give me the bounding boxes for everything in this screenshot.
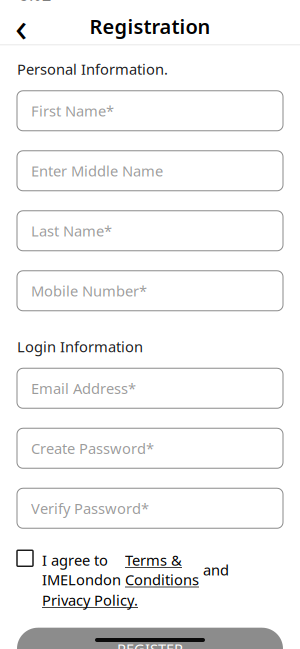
button[interactable]: Email Address*	[17, 368, 283, 408]
button[interactable]: Last Name*	[17, 211, 283, 251]
staticText: I agree to IMELondon	[42, 550, 125, 589]
button[interactable]: REGISTER	[17, 628, 283, 649]
staticText: Enter Middle Name	[31, 161, 163, 180]
button[interactable]: Enter Middle Name	[17, 151, 283, 191]
staticText: Personal Information.	[17, 59, 168, 79]
staticText: REGISTER	[117, 639, 183, 649]
staticText: 5:02	[20, 0, 51, 5]
button[interactable]: First Name*	[17, 91, 283, 131]
button[interactable]: I agree to IMELondon	[17, 528, 283, 610]
staticText: Login Information	[17, 337, 143, 356]
button[interactable]: Mobile Number*	[17, 271, 283, 311]
staticText: Terms & Conditions	[125, 550, 199, 589]
staticText: ‹	[15, 0, 27, 53]
button[interactable]: Create Password*	[17, 428, 283, 468]
staticText: Verify Password*	[31, 498, 149, 518]
staticText: Registration	[89, 13, 210, 40]
staticText: Privacy Policy.	[42, 590, 138, 610]
button[interactable]: Back	[4, 9, 38, 43]
staticText: and	[199, 560, 229, 579]
staticText: Mobile Number*	[31, 281, 147, 300]
staticText: Create Password*	[31, 438, 154, 458]
button[interactable]: Verify Password*	[17, 488, 283, 528]
staticText: First Name*	[31, 101, 114, 120]
staticText: Email Address*	[31, 378, 136, 398]
staticText: Last Name*	[31, 221, 112, 240]
